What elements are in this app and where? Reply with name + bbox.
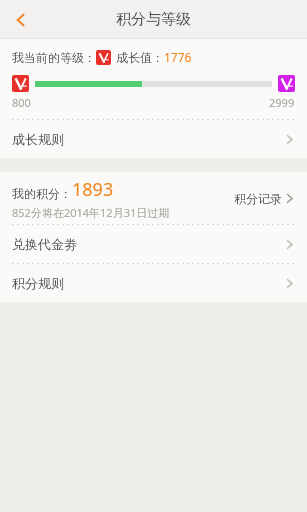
staticText: 852分将在2014年12月31日过期 <box>12 205 170 220</box>
staticText: 成长规则 <box>12 131 64 147</box>
staticText: 兑换代金劵 <box>12 236 77 252</box>
staticText: 1893 <box>72 177 114 202</box>
staticText: 成长值： <box>116 50 164 65</box>
staticText: 我的积分： <box>12 186 72 201</box>
staticText: 积分与等级 <box>116 10 191 29</box>
staticText: 1776 <box>164 49 192 65</box>
button[interactable]: 积分规则 <box>0 264 307 302</box>
button[interactable]: 成长规则 <box>0 120 307 158</box>
button[interactable]: 积分记录 <box>226 185 295 212</box>
staticText: 800 <box>12 95 31 110</box>
staticText: 我当前的等级： <box>12 50 96 65</box>
button[interactable]: Back <box>0 0 42 39</box>
staticText: 2999 <box>269 95 295 110</box>
button[interactable]: 兑换代金劵 <box>0 225 307 263</box>
staticText: 积分记录 <box>234 191 282 206</box>
staticText: 积分规则 <box>12 275 64 291</box>
